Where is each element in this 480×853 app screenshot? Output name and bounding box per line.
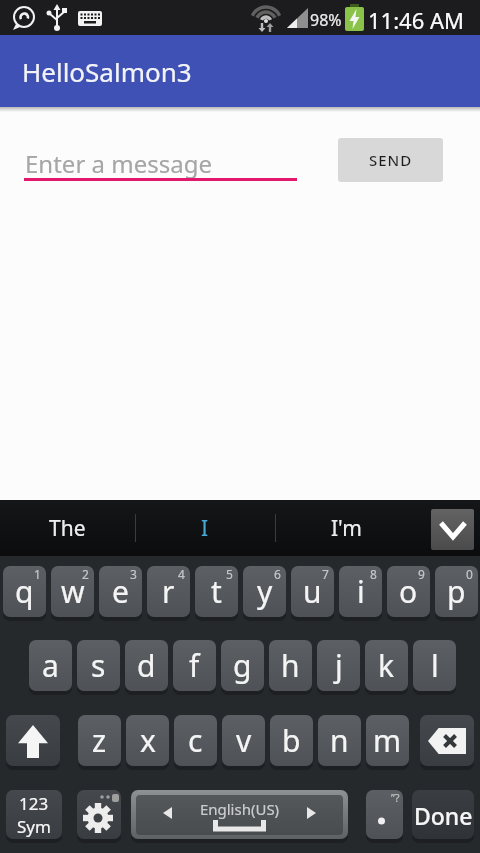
button[interactable]: z [78,715,121,767]
staticText: Enter a message [25,147,212,180]
staticText: Done [414,800,473,831]
button[interactable]: o [387,566,430,618]
staticText: I'm [331,514,362,543]
staticText: o [399,571,418,612]
staticText: g [233,645,252,686]
staticText: 7 [322,566,329,582]
button[interactable]: e [99,566,142,618]
staticText: 1 [34,566,41,582]
button[interactable]: k [365,640,408,692]
button[interactable]: English(US) [131,790,348,840]
staticText: j [335,645,343,686]
staticText: The [49,514,86,543]
button[interactable] [77,790,121,840]
staticText: w [61,571,85,612]
button[interactable] [6,715,60,767]
button[interactable]: n [318,715,361,767]
button[interactable]: b [270,715,313,767]
button[interactable]: w [51,566,94,618]
staticText: h [281,645,300,686]
staticText: HelloSalmon3 [22,54,192,89]
button[interactable]: g [221,640,264,692]
staticText: c [188,720,203,761]
button[interactable]: SEND [338,138,443,182]
staticText: English(US) [131,799,348,819]
staticText: u [303,571,322,612]
button[interactable]: q [3,566,46,618]
button[interactable]: d [125,640,168,692]
button[interactable]: ’’? [366,790,403,840]
staticText: m [373,720,402,761]
staticText: 98% [310,9,342,31]
button[interactable]: a [29,640,72,692]
button[interactable]: y [243,566,286,618]
button[interactable]: p [435,566,478,618]
button[interactable]: s [77,640,120,692]
button[interactable]: I [135,500,275,556]
button[interactable]: The [0,500,135,556]
button[interactable]: 123 [6,790,62,840]
staticText: 9 [418,566,425,582]
staticText: 5 [226,566,233,582]
button[interactable]: r [147,566,190,618]
button[interactable]: i [339,566,382,618]
staticText: 8 [370,566,377,582]
button[interactable]: v [222,715,265,767]
staticText: i [357,571,365,612]
button[interactable]: j [317,640,360,692]
button[interactable]: I'm [275,500,417,556]
staticText: 4 [178,566,185,582]
button[interactable]: m [366,715,409,767]
staticText: 2 [82,566,89,582]
staticText: s [91,645,106,686]
staticText: d [137,645,156,686]
staticText: n [330,720,349,761]
staticText: e [112,571,129,612]
staticText: t [211,571,222,612]
staticText: 6 [274,566,281,582]
button[interactable]: t [195,566,238,618]
button[interactable]: f [173,640,216,692]
staticText: 3 [130,566,137,582]
button[interactable]: c [174,715,217,767]
staticText: Sym [17,815,51,838]
staticText: 123 [19,792,49,815]
button[interactable]: x [126,715,169,767]
staticText: p [447,571,466,612]
button[interactable]: l [413,640,456,692]
button[interactable]: u [291,566,334,618]
staticText: z [92,720,107,761]
staticText: l [431,645,439,686]
staticText: y [257,571,273,612]
button[interactable]: h [269,640,312,692]
button[interactable]: Done [412,790,474,840]
staticText: x [140,720,156,761]
staticText: ’’? [391,790,400,805]
staticText: v [236,720,252,761]
staticText: I [201,514,209,543]
button[interactable] [420,715,474,767]
staticText: k [378,645,395,686]
staticText: a [42,645,59,686]
button[interactable] [431,509,474,550]
staticText: 0 [466,566,473,582]
staticText: q [15,571,34,612]
staticText: f [189,645,200,686]
staticText: SEND [369,150,413,170]
staticText: r [162,571,175,612]
staticText: 11:46 AM [368,5,464,35]
staticText: b [282,720,301,761]
